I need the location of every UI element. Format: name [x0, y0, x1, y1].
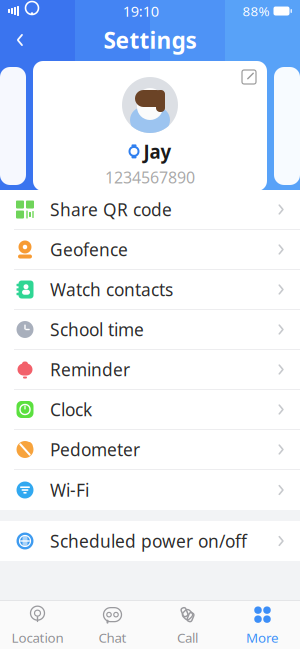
button[interactable]: Pedometer: [0, 430, 300, 470]
staticText: 88%: [242, 2, 269, 20]
button[interactable]: Back: [0, 22, 40, 58]
staticText: Settings: [103, 25, 196, 55]
staticText: Call: [177, 629, 198, 646]
staticText: Pedometer: [50, 438, 140, 461]
staticText: Reminder: [50, 358, 130, 381]
button[interactable]: Watch contacts: [0, 270, 300, 310]
button[interactable]: Jay profile: [33, 61, 267, 191]
button[interactable]: Share QR code: [0, 190, 300, 230]
staticText: Scheduled power on/off: [50, 529, 247, 552]
button[interactable]: Clock: [0, 390, 300, 430]
staticText: Watch contacts: [50, 278, 173, 301]
staticText: Jay: [143, 139, 171, 164]
button[interactable]: Location: [0, 601, 75, 649]
staticText: 19:10: [123, 1, 159, 21]
button[interactable]: Reminder: [0, 350, 300, 390]
staticText: 1234567890: [105, 167, 195, 188]
button[interactable]: Call: [150, 601, 225, 649]
staticText: More: [246, 629, 279, 646]
button[interactable]: Scheduled power on/off: [0, 521, 300, 561]
button[interactable]: Geofence: [0, 230, 300, 270]
staticText: School time: [50, 318, 144, 341]
staticText: Wi-Fi: [50, 478, 89, 501]
staticText: Clock: [50, 398, 92, 421]
staticText: Location: [11, 629, 63, 646]
button[interactable]: More: [225, 601, 300, 649]
button[interactable]: Wi-Fi: [0, 470, 300, 510]
staticText: Geofence: [50, 238, 128, 261]
button[interactable]: Chat: [75, 601, 150, 649]
staticText: Share QR code: [50, 198, 172, 221]
staticText: Chat: [98, 629, 126, 646]
button[interactable]: School time: [0, 310, 300, 350]
